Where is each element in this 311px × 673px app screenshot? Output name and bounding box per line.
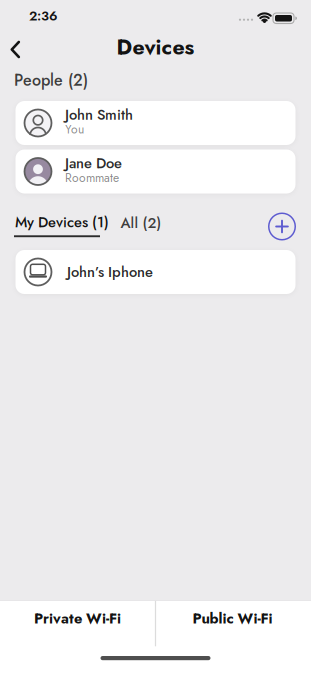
- staticText: People (2): [14, 69, 88, 91]
- button[interactable]: John’s Iphone: [15, 250, 295, 294]
- button[interactable]: Add device: [269, 213, 295, 240]
- staticText: John’s Iphone: [67, 262, 153, 282]
- button[interactable]: John Smith: [15, 101, 295, 145]
- staticText: John Smith: [65, 104, 133, 125]
- staticText: Jane Doe: [65, 153, 122, 173]
- staticText: Roommate: [65, 169, 119, 186]
- button[interactable]: All (2): [120, 212, 161, 233]
- button[interactable]: Back: [5, 37, 30, 62]
- staticText: Public Wi-Fi: [192, 608, 272, 629]
- staticText: You: [65, 121, 84, 138]
- staticText: Private Wi-Fi: [34, 608, 121, 629]
- staticText: My Devices (1): [15, 212, 109, 232]
- button[interactable]: Private Wi-Fi: [0, 600, 155, 637]
- staticText: Devices: [116, 32, 194, 62]
- staticText: All (2): [120, 212, 161, 233]
- button[interactable]: Public Wi-Fi: [155, 600, 310, 637]
- button[interactable]: My Devices (1): [14, 212, 109, 237]
- button[interactable]: Jane Doe: [15, 149, 295, 193]
- staticText: 2:36: [29, 6, 58, 25]
